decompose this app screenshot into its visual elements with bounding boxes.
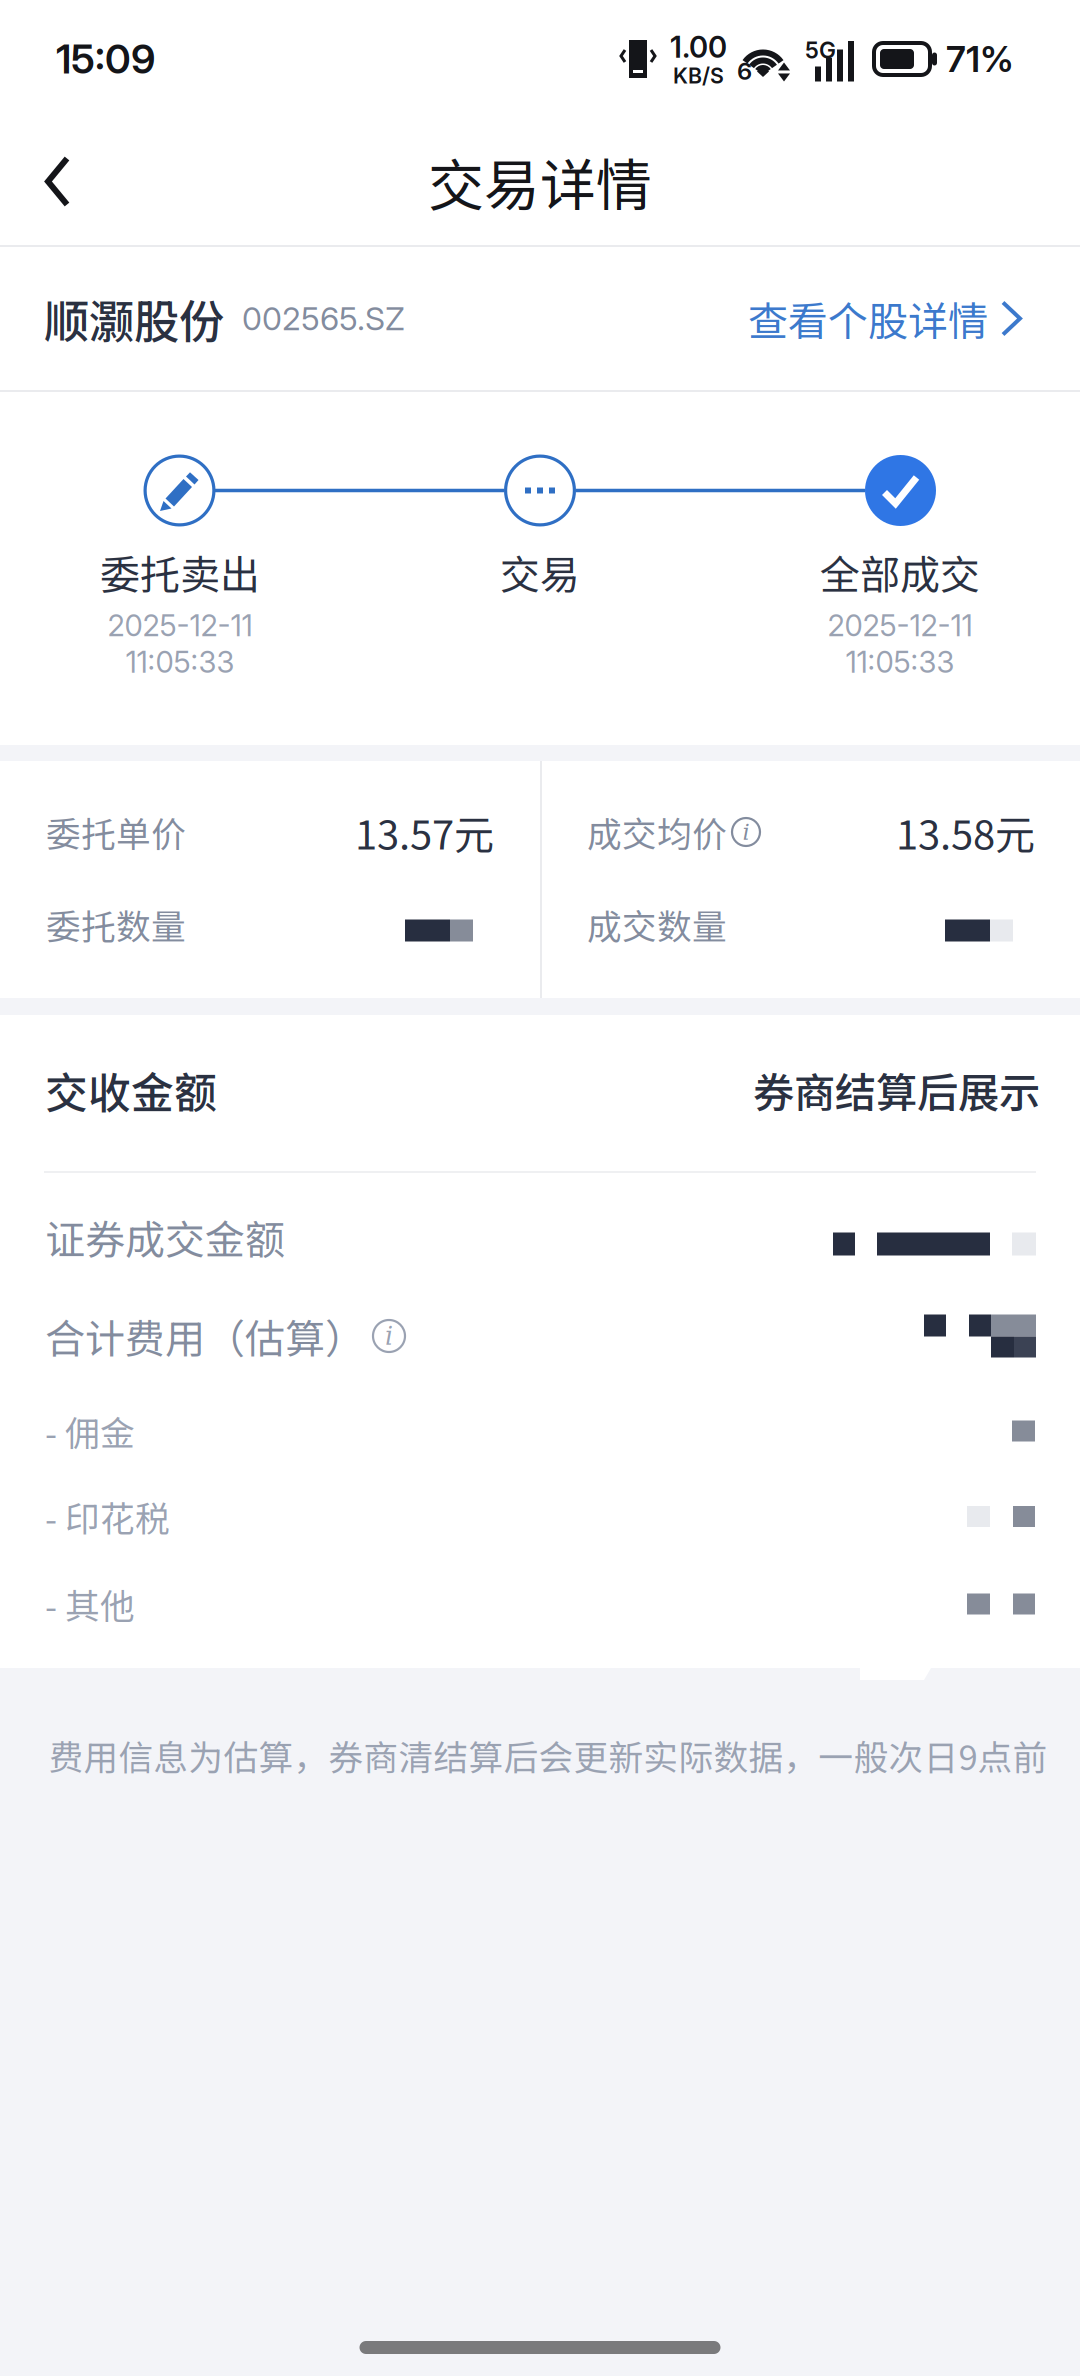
staticText: 交易详情 [428,141,652,222]
staticText: 13.58元 [896,803,1035,861]
staticText: 券商结算后展示 [753,1060,1040,1120]
staticText: 成交数量 [587,899,727,950]
staticText: - 佣金 [45,1406,135,1456]
staticText: 成交均价 [587,807,727,857]
staticText: 1.00 [670,29,727,65]
staticText: 全部成交 [820,543,980,601]
staticText: 71% [946,37,1014,81]
staticText: 13.57元 [355,803,494,861]
staticText: 2025-12-11 [827,608,972,643]
staticText: 交易 [500,543,580,601]
staticText: 合计费用（估算） [45,1307,365,1365]
button[interactable]: 查看个股详情 [748,265,1024,371]
staticText: 顺灏股份 [44,286,224,351]
staticText: 委托单价 [46,807,186,857]
staticText: 11:05:33 [125,644,234,680]
staticText: 交收金额 [45,1059,217,1121]
staticText: 委托卖出 [100,543,260,601]
staticText: 002565.SZ [242,299,405,338]
button[interactable]: Back [0,118,112,245]
staticText: 2025-12-11 [107,608,252,643]
staticText: i [385,1321,393,1351]
staticText: 5G [805,36,836,64]
staticText: - 印花税 [45,1491,170,1542]
staticText: - 其他 [45,1579,135,1629]
staticText: 6 [737,56,752,85]
staticText: 11:05:33 [845,644,954,680]
staticText: 证券成交金额 [45,1208,285,1266]
staticText: i [742,819,749,845]
staticText: KB/S [673,63,724,89]
staticText: 查看个股详情 [748,289,988,347]
staticText: 15:09 [56,35,155,83]
staticText: 费用信息为估算，券商清结算后会更新实际数据，一般次日9点前 [48,1730,1047,1780]
staticText: 委托数量 [46,899,186,950]
